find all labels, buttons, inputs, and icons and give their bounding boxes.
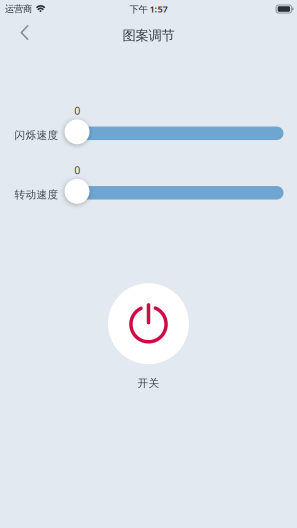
button[interactable]: 开关 <box>108 283 189 390</box>
button[interactable]: 闪烁速度 <box>64 119 283 144</box>
staticText: 运营商 <box>5 3 32 15</box>
staticText: 0 <box>74 163 80 177</box>
button[interactable]: 返回 <box>4 15 44 51</box>
button[interactable]: 转动速度 <box>64 179 283 204</box>
staticText: 转动速度 <box>14 188 58 201</box>
staticText: 图案调节 <box>122 27 174 44</box>
staticText: 开关 <box>137 377 159 390</box>
staticText: 闪烁速度 <box>14 129 58 142</box>
staticText: 下午 1:57 <box>129 3 167 15</box>
staticText: 0 <box>74 104 80 118</box>
